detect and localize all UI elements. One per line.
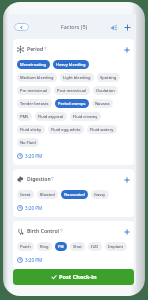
staticText: IUD	[91, 244, 99, 249]
button[interactable]: Add Digestion	[123, 176, 131, 184]
button[interactable]: Fluid watery	[87, 125, 117, 134]
button[interactable]: Period cramps	[55, 99, 89, 108]
button[interactable]: Fluid egg-white	[48, 125, 84, 134]
button[interactable]: Post menstrual	[54, 86, 90, 95]
button[interactable]: IUD	[88, 242, 102, 251]
staticText: Shot	[73, 244, 82, 249]
staticText: Light bleeding	[63, 75, 91, 80]
staticText: Fluid egg-white	[51, 127, 81, 132]
staticText: Medium bleeding	[20, 75, 54, 80]
button[interactable]: Great	[17, 190, 34, 199]
staticText: Spotting	[100, 75, 117, 80]
button[interactable]: Tender breasts	[17, 99, 52, 108]
staticText: Ring	[40, 244, 49, 249]
button[interactable]: Heavy bleeding	[53, 60, 89, 69]
button[interactable]: Ring	[37, 242, 52, 251]
staticText: Menstruating	[20, 62, 47, 67]
button[interactable]: Menstruating	[17, 60, 50, 69]
staticText: Great	[20, 192, 31, 197]
button[interactable]: Light bleeding	[60, 73, 94, 82]
staticText: Bloated	[40, 192, 55, 197]
staticText: Tender breasts	[20, 101, 49, 106]
staticText: Ovulation	[96, 88, 115, 93]
button[interactable]: No Fluid	[17, 138, 39, 147]
staticText: Birth Control	[27, 228, 60, 235]
staticText: PMS	[20, 114, 29, 119]
staticText: Pre menstrual	[20, 88, 48, 93]
staticText: Fluid watery	[90, 127, 114, 132]
staticText: Digestion	[27, 176, 51, 183]
button[interactable]: Add factor	[123, 23, 132, 32]
button[interactable]: Add Period	[123, 46, 131, 54]
button[interactable]: Shot	[70, 242, 85, 251]
button[interactable]: Ovulation	[93, 86, 118, 95]
staticText: Implant	[108, 244, 124, 249]
staticText: Nauseated	[64, 192, 85, 197]
button[interactable]: Gassy	[91, 190, 109, 199]
staticText: Fluid creamy	[73, 114, 98, 119]
button[interactable]: Bloated	[37, 190, 58, 199]
staticText: Period cramps	[58, 101, 86, 106]
button[interactable]: Medium bleeding	[17, 73, 57, 82]
button[interactable]: Back	[14, 23, 29, 31]
staticText: 3:20 PM	[25, 257, 43, 263]
button[interactable]: Fluid atypical	[35, 112, 67, 121]
staticText: Fluid sticky	[20, 127, 42, 132]
button[interactable]: Patch	[17, 242, 34, 251]
button[interactable]: Announcements	[108, 22, 118, 32]
button[interactable]: Post Check-in	[13, 269, 134, 285]
button[interactable]: Spotting	[97, 73, 120, 82]
staticText: Post menstrual	[57, 88, 87, 93]
staticText: Patch	[20, 244, 31, 249]
button[interactable]: Nauseated	[61, 190, 88, 199]
button[interactable]: Pill	[55, 242, 67, 251]
staticText: 3:20 PM	[25, 205, 43, 211]
staticText: Pill	[58, 244, 64, 249]
staticText: Gassy	[94, 192, 106, 197]
button[interactable]: Nausea	[92, 99, 113, 108]
staticText: Post Check-in	[59, 273, 97, 281]
button[interactable]: Implant	[105, 242, 127, 251]
button[interactable]: Pre menstrual	[17, 86, 51, 95]
staticText: 3:20 PM	[25, 153, 43, 159]
staticText: Nausea	[95, 101, 110, 106]
staticText: Period	[27, 46, 44, 53]
staticText: Heavy bleeding	[56, 62, 86, 67]
button[interactable]: Fluid creamy	[70, 112, 101, 121]
button[interactable]: PMS	[17, 112, 32, 121]
staticText: Factors (5)	[61, 23, 88, 30]
button[interactable]: Add Birth Control	[123, 228, 131, 236]
staticText: Fluid atypical	[38, 114, 64, 119]
button[interactable]: Fluid sticky	[17, 125, 45, 134]
staticText: No Fluid	[20, 140, 36, 145]
